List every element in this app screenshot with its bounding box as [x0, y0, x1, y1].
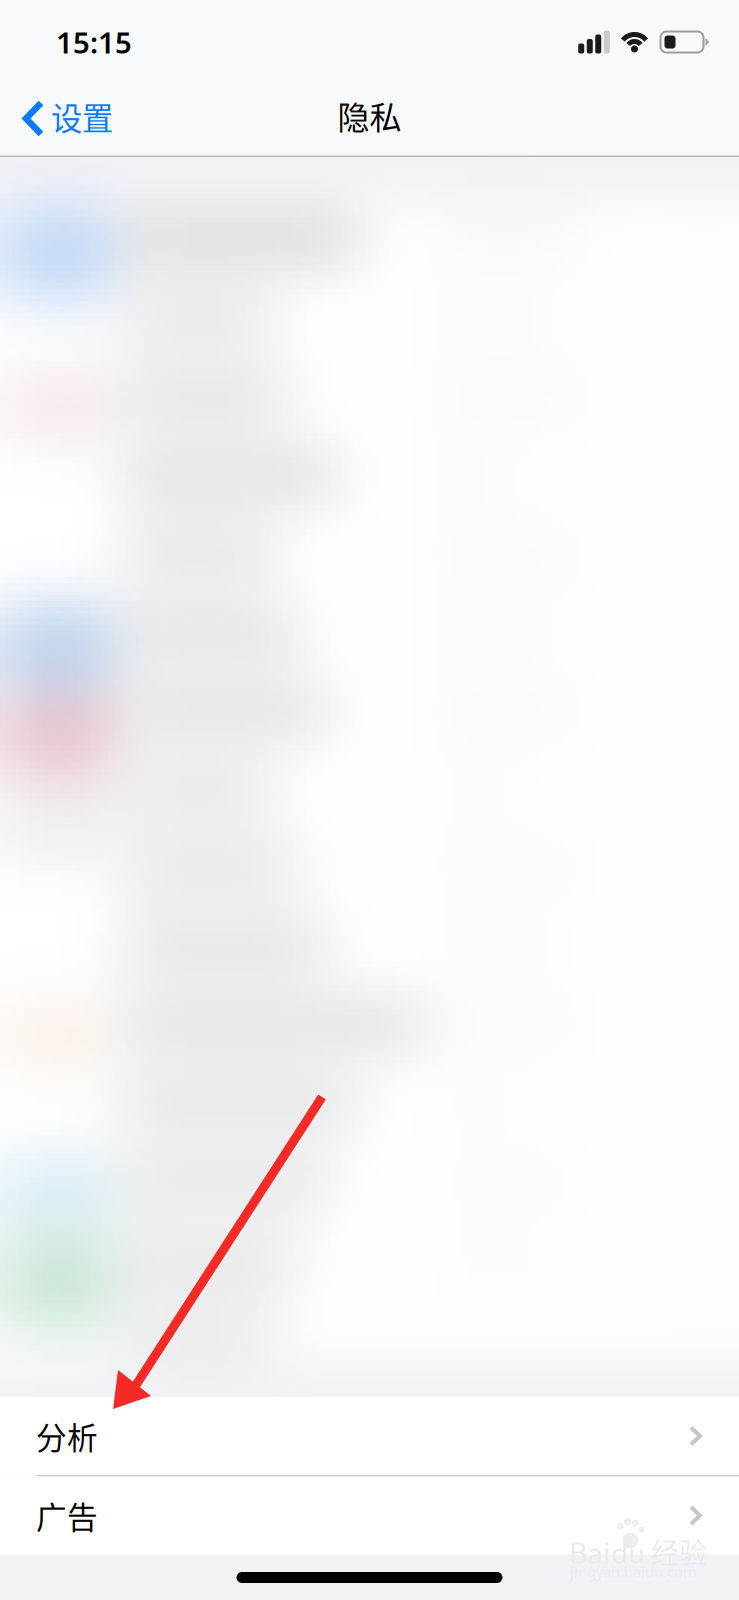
- staticText: 广告: [36, 1493, 98, 1538]
- button[interactable]: 分析: [0, 1397, 739, 1475]
- staticText: 设置: [51, 94, 113, 139]
- staticText: 15:15: [56, 22, 132, 61]
- staticText: 分析: [36, 1414, 98, 1458]
- staticText: 隐私: [337, 92, 401, 139]
- staticText: Baidu 经验: [569, 1531, 707, 1571]
- button[interactable]: 广告: [0, 1476, 739, 1554]
- button[interactable]: 设置: [0, 84, 113, 156]
